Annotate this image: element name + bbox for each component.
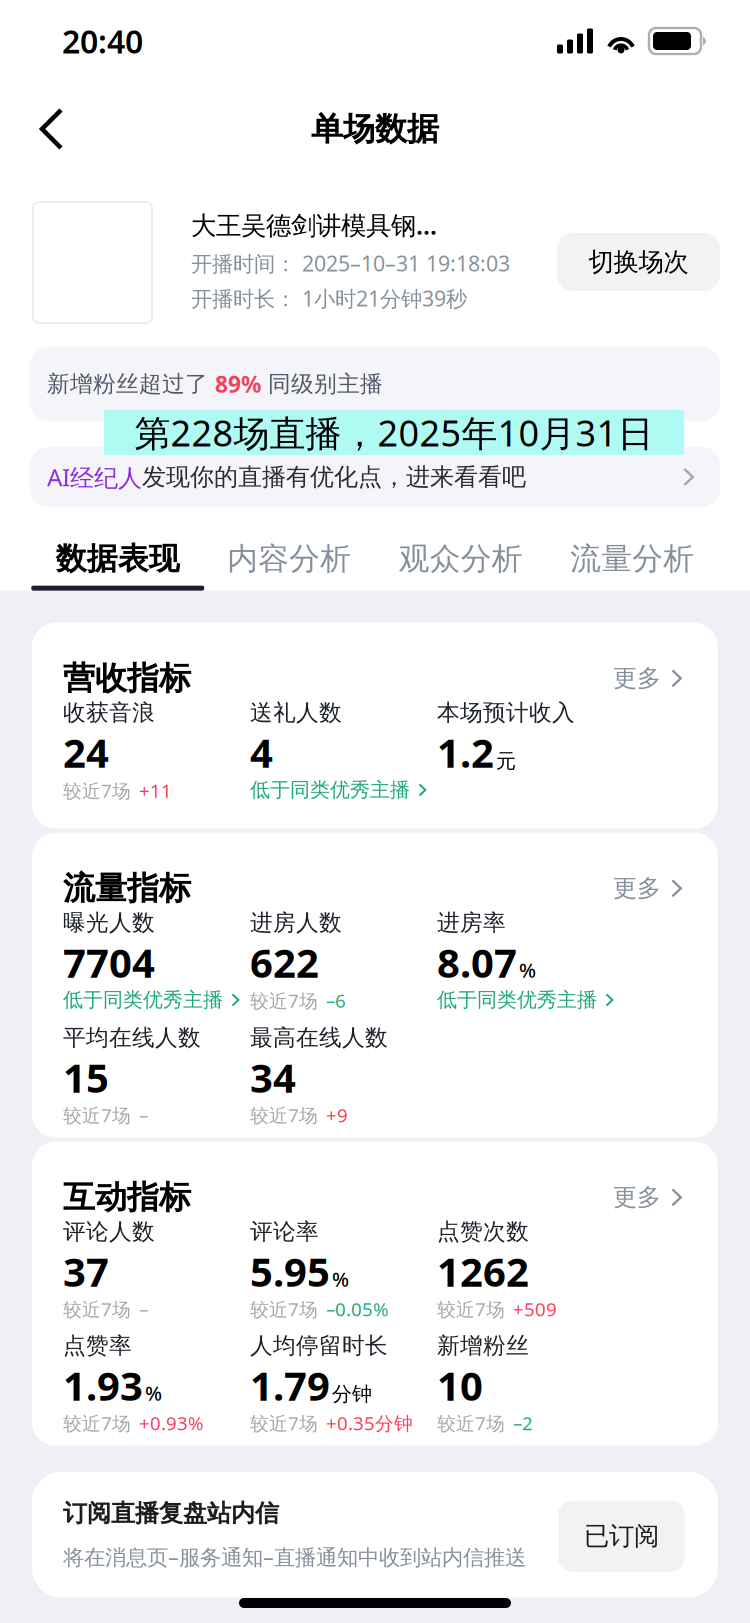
staticText: 观众分析 xyxy=(399,540,523,578)
staticText: –0.05% xyxy=(326,1297,389,1321)
staticText: % xyxy=(145,1380,162,1406)
staticText: 较近7场 xyxy=(63,1297,131,1321)
staticText: 1.2 xyxy=(437,726,494,779)
staticText: 点赞率 xyxy=(63,1332,132,1359)
staticText: 更多 xyxy=(613,874,661,903)
button[interactable]: 返回 xyxy=(14,91,90,167)
staticText: 订阅直播复盘站内信 xyxy=(63,1498,279,1528)
staticText: 数据表现 xyxy=(56,540,180,578)
staticText: 1.93 xyxy=(63,1359,143,1412)
button[interactable]: 切换场次 xyxy=(557,233,720,291)
staticText: 7704 xyxy=(63,936,155,989)
staticText: 开播时间： 2025–10–31 19:18:03 xyxy=(191,249,510,277)
staticText: 4 xyxy=(250,726,273,779)
staticText: 较近7场 xyxy=(63,1411,131,1435)
staticText: 较近7场 xyxy=(437,1411,505,1435)
staticText: 10 xyxy=(437,1359,483,1412)
button[interactable]: 低于同类优秀主播 xyxy=(250,778,624,814)
button[interactable]: 更多 xyxy=(613,1183,686,1212)
staticText: – xyxy=(139,1297,148,1321)
staticText: 24 xyxy=(63,726,109,779)
staticText: 最高在线人数 xyxy=(250,1024,388,1051)
staticText: 内容分析 xyxy=(227,540,351,578)
staticText: 本场预计收入 xyxy=(437,699,575,726)
staticText: 人均停留时长 xyxy=(250,1332,388,1359)
staticText: 较近7场 xyxy=(63,778,131,803)
staticText: 发现你的直播有优化点，进来看看吧 xyxy=(142,462,526,492)
staticText: 评论率 xyxy=(250,1218,319,1245)
staticText: 第228场直播，2025年10月31日 xyxy=(134,409,653,456)
staticText: 34 xyxy=(250,1051,296,1104)
staticText: 流量分析 xyxy=(570,540,694,578)
staticText: 分钟 xyxy=(332,1382,372,1406)
staticText: 点赞次数 xyxy=(437,1218,529,1245)
staticText: 20:40 xyxy=(62,20,143,62)
staticText: 新增粉丝超过了 xyxy=(47,370,215,398)
staticText: 评论人数 xyxy=(63,1218,155,1245)
staticText: 曝光人数 xyxy=(63,909,155,936)
staticText: 已订阅 xyxy=(584,1521,659,1552)
staticText: 新增粉丝 xyxy=(437,1332,529,1359)
staticText: –2 xyxy=(513,1411,533,1435)
staticText: 较近7场 xyxy=(250,1297,318,1321)
staticText: 更多 xyxy=(613,664,661,693)
staticText: 低于同类优秀主播 xyxy=(437,988,597,1012)
staticText: 大王吴德剑讲模具钢… xyxy=(191,208,437,242)
staticText: +0.35分钟 xyxy=(326,1411,413,1435)
button[interactable]: 低于同类优秀主播 xyxy=(437,988,624,1024)
button[interactable]: 观众分析 xyxy=(375,540,546,591)
staticText: 1262 xyxy=(437,1245,529,1298)
staticText: 1.79 xyxy=(250,1359,330,1412)
staticText: 送礼人数 xyxy=(250,699,342,726)
staticText: 进房率 xyxy=(437,909,506,936)
staticText: –6 xyxy=(326,988,346,1013)
staticText: 更多 xyxy=(613,1183,661,1212)
staticText: 较近7场 xyxy=(437,1297,505,1321)
staticText: 互动指标 xyxy=(63,1178,191,1217)
staticText: 平均在线人数 xyxy=(63,1024,201,1051)
staticText: % xyxy=(519,957,536,983)
staticText: 进房人数 xyxy=(250,909,342,936)
staticText: 较近7场 xyxy=(250,1103,318,1127)
staticText: 622 xyxy=(250,936,319,989)
staticText: 同级别主播 xyxy=(261,370,383,398)
staticText: AI经纪人 xyxy=(47,461,142,493)
button[interactable]: 更多 xyxy=(613,874,686,903)
staticText: 89% xyxy=(215,369,261,399)
staticText: 将在消息页–服务通知–直播通知中收到站内信推送 xyxy=(63,1542,526,1571)
staticText: 切换场次 xyxy=(588,246,688,277)
staticText: 37 xyxy=(63,1245,109,1298)
staticText: 单场数据 xyxy=(311,109,439,149)
staticText: 较近7场 xyxy=(250,1411,318,1435)
staticText: 8.07 xyxy=(437,936,517,989)
button[interactable]: 数据表现 xyxy=(32,540,203,591)
staticText: +0.93% xyxy=(139,1411,204,1435)
staticText: 较近7场 xyxy=(63,1103,131,1127)
staticText: 5.95 xyxy=(250,1245,330,1298)
button[interactable]: 已订阅 xyxy=(558,1501,685,1572)
button[interactable]: 内容分析 xyxy=(203,540,375,591)
staticText: – xyxy=(139,1103,148,1127)
button[interactable]: AI经纪人 xyxy=(30,447,720,507)
staticText: +509 xyxy=(513,1297,557,1321)
staticText: 低于同类优秀主播 xyxy=(63,988,223,1012)
staticText: 营收指标 xyxy=(63,659,191,698)
staticText: 收获音浪 xyxy=(63,699,155,726)
staticText: 元 xyxy=(496,749,516,773)
staticText: % xyxy=(332,1266,349,1292)
staticText: 较近7场 xyxy=(250,988,318,1013)
staticText: 低于同类优秀主播 xyxy=(250,778,410,802)
staticText: +11 xyxy=(139,778,172,803)
button[interactable]: 更多 xyxy=(613,664,686,693)
staticText: 流量指标 xyxy=(63,869,191,908)
button[interactable]: 流量分析 xyxy=(546,540,718,591)
staticText: 开播时长： 1小时21分钟39秒 xyxy=(191,284,467,312)
staticText: 15 xyxy=(63,1051,109,1104)
staticText: +9 xyxy=(326,1103,348,1127)
button[interactable]: 低于同类优秀主播 xyxy=(63,988,250,1024)
